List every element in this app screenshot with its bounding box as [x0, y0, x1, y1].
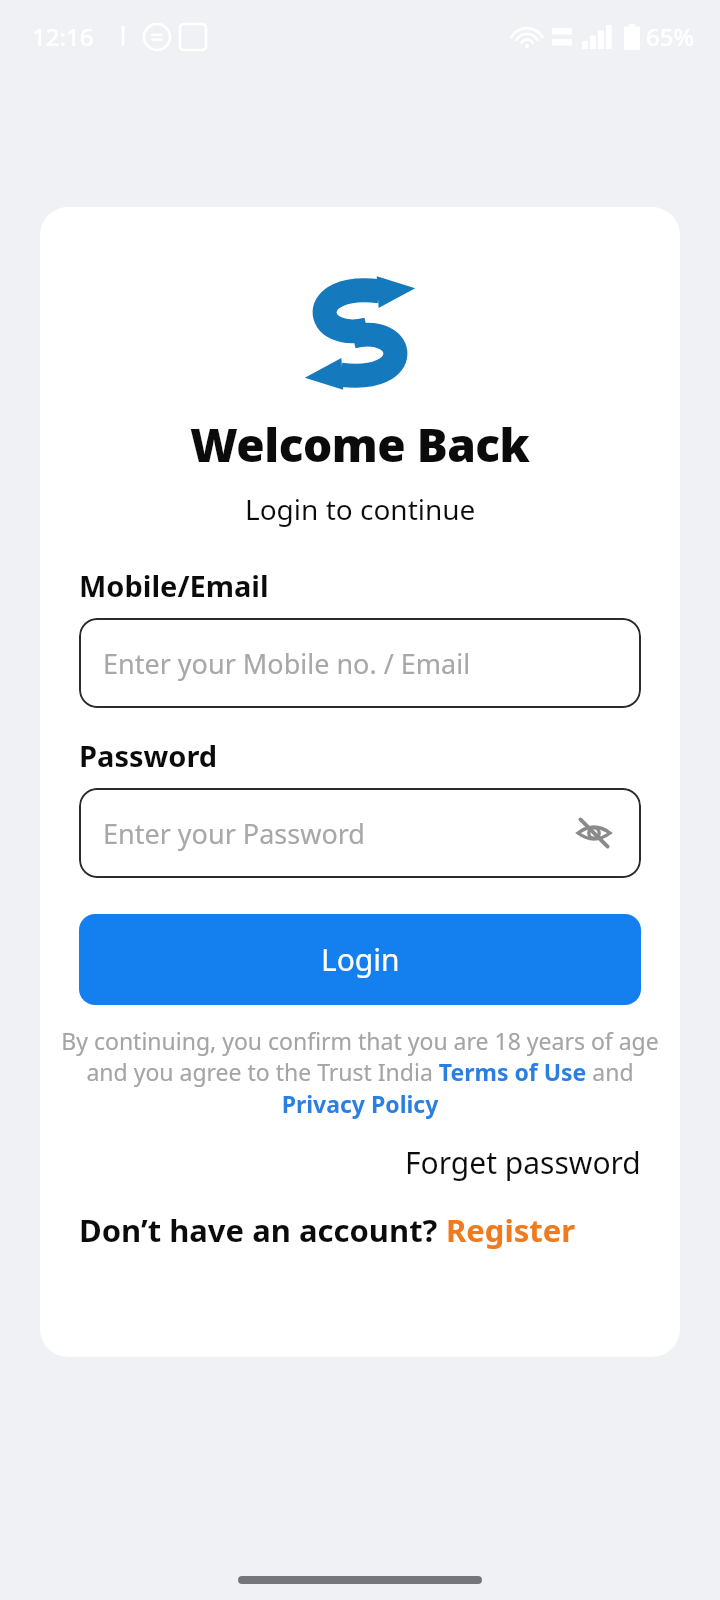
button[interactable]: Enter your Password [79, 788, 641, 878]
staticText: Forget password [405, 1142, 641, 1183]
staticText: Password [79, 736, 218, 775]
staticText: By continuing, you confirm that you are … [60, 1025, 660, 1120]
staticText: Welcome Back [190, 413, 530, 476]
staticText: Register [446, 1209, 576, 1251]
staticText: 65% [646, 20, 694, 53]
staticText: Login to continue [245, 490, 476, 528]
staticText: Enter your Password [103, 815, 571, 852]
staticText: Login [321, 939, 400, 980]
button[interactable]: Forget password [405, 1142, 641, 1183]
button[interactable]: Enter your Mobile no. / Email [79, 618, 641, 708]
staticText: Enter your Mobile no. / Email [103, 645, 617, 682]
button[interactable]: Login [79, 914, 641, 1005]
staticText: Don’t have an account? [79, 1209, 446, 1251]
staticText: Mobile/Email [79, 566, 269, 605]
button[interactable]: Register [446, 1209, 576, 1251]
staticText: 12:16 [32, 20, 94, 53]
button[interactable]: Show password [571, 810, 617, 856]
